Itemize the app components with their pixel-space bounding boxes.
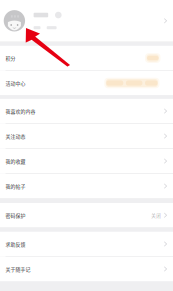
staticText: 我的帖子 bbox=[6, 182, 26, 190]
staticText: 积分 bbox=[6, 54, 16, 62]
staticText: 密码保护 bbox=[6, 212, 26, 219]
button[interactable]: 我的收藏 bbox=[0, 149, 173, 173]
staticText: 关闭 bbox=[151, 212, 161, 218]
staticText: 我喜欢的内容 bbox=[6, 107, 36, 115]
button[interactable]: 我的帖子 bbox=[0, 174, 173, 198]
button[interactable]: 我喜欢的内容 bbox=[0, 99, 173, 123]
button[interactable] bbox=[0, 0, 173, 42]
button[interactable]: 密码保护 bbox=[0, 203, 173, 227]
button[interactable]: 活动中心 bbox=[0, 71, 173, 95]
staticText: 关于随手记 bbox=[6, 265, 31, 272]
button[interactable]: 求助反馈 bbox=[0, 232, 173, 256]
staticText: 求助反馈 bbox=[6, 240, 26, 247]
button[interactable]: 积分 bbox=[0, 46, 173, 70]
staticText: 我的收藏 bbox=[6, 157, 26, 165]
staticText: 活动中心 bbox=[6, 79, 26, 87]
button[interactable]: 关于随手记 bbox=[0, 257, 173, 281]
staticText: 关注动态 bbox=[6, 132, 26, 140]
button[interactable]: 关注动态 bbox=[0, 124, 173, 148]
